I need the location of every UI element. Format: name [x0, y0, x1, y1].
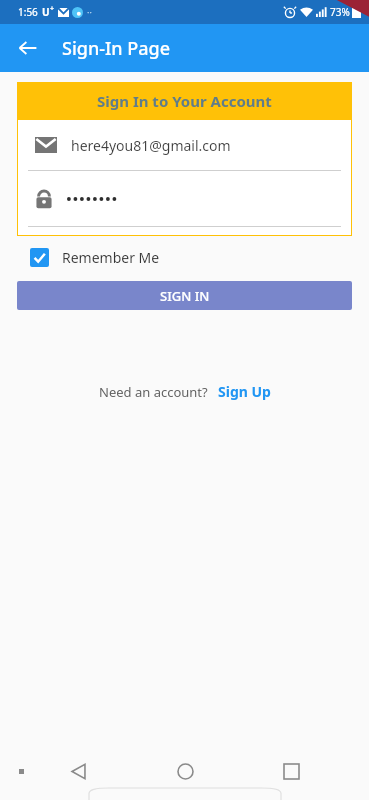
staticText: Sign Up [218, 382, 271, 401]
staticText: Remember Me [62, 248, 160, 267]
staticText: Sign-In Page [62, 36, 171, 61]
button[interactable]: Back [60, 753, 96, 789]
button[interactable]: here4you81@gmail.com [17, 120, 352, 170]
staticText: 73% [330, 5, 350, 19]
staticText: 1:56 [18, 5, 38, 19]
button[interactable]: SIGN IN [17, 281, 352, 310]
staticText: SIGN IN [160, 287, 210, 305]
button[interactable]: Back [8, 28, 48, 68]
button[interactable]: Sign Up [218, 382, 271, 401]
staticText: U [42, 5, 50, 19]
staticText: Sign In to Your Account [97, 91, 272, 111]
button[interactable]: Home [167, 753, 203, 789]
staticText: + [50, 4, 55, 14]
button[interactable] [17, 171, 352, 226]
staticText: Need an account? [99, 383, 208, 401]
staticText: here4you81@gmail.com [71, 136, 231, 155]
staticText: ·· [87, 6, 92, 18]
button[interactable]: Recent apps [273, 753, 309, 789]
button[interactable]: Remember Me [30, 248, 160, 267]
